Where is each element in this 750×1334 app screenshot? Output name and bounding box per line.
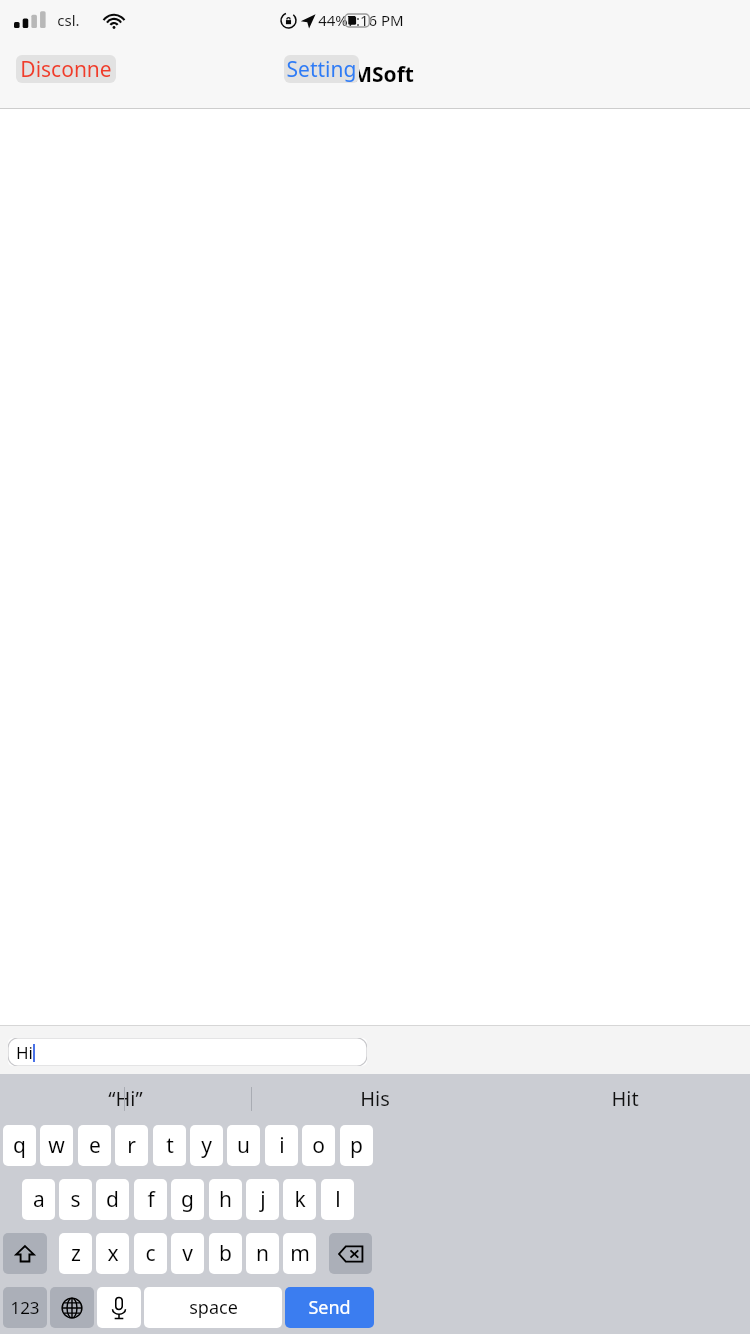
button[interactable]: g [171,1179,204,1220]
button[interactable]: e [78,1125,111,1166]
button[interactable]: n [246,1233,279,1274]
staticText: 123 [10,1296,40,1319]
button[interactable]: c [134,1233,167,1274]
button[interactable]: a [22,1179,55,1220]
staticText: Disconnect [16,55,116,83]
button[interactable]: x [96,1233,129,1274]
button[interactable]: f [134,1179,167,1220]
button[interactable]: w [40,1125,73,1166]
button[interactable]: Dictate [97,1287,141,1328]
button[interactable]: m [283,1233,316,1274]
staticText: “Hi” [108,1085,143,1112]
button[interactable]: h [209,1179,242,1220]
button[interactable]: Change keyboard [50,1287,94,1328]
button[interactable]: b [209,1233,242,1274]
button[interactable]: l [321,1179,354,1220]
staticText: l [335,1185,341,1214]
staticText: r [127,1131,136,1160]
button[interactable]: d [96,1179,129,1220]
button[interactable]: p [340,1125,373,1166]
staticText: z [71,1239,81,1268]
button[interactable]: u [227,1125,260,1166]
staticText: csl. [57,10,80,30]
staticText: 44% [318,10,348,30]
staticText: Send [308,1295,351,1320]
staticText: x [107,1239,119,1268]
staticText: v [182,1239,193,1268]
button[interactable]: o [302,1125,335,1166]
staticText: f [147,1185,155,1214]
staticText: p [350,1131,363,1160]
staticText: w [48,1131,65,1160]
staticText: h [219,1185,232,1214]
staticText: His [360,1085,390,1112]
staticText: Hi [16,1041,33,1064]
staticText: u [237,1131,250,1160]
staticText: k [294,1185,306,1214]
button[interactable]: 123 [3,1287,47,1328]
staticText: b [219,1239,232,1268]
button[interactable]: v [171,1233,204,1274]
staticText: n [256,1239,269,1268]
staticText: g [181,1185,194,1214]
staticText: Settings [284,55,359,83]
button[interactable]: Shift [3,1233,47,1274]
button[interactable]: “Hi” [0,1074,250,1123]
staticText: Hit [611,1085,639,1112]
staticText: a [33,1185,45,1214]
staticText: y [201,1131,212,1160]
button[interactable]: s [59,1179,92,1220]
staticText: 7:16 PM [347,10,404,30]
button[interactable]: y [190,1125,223,1166]
button[interactable]: space [144,1287,282,1328]
staticText: d [106,1185,119,1214]
button[interactable]: q [3,1125,36,1166]
staticText: i [279,1131,285,1160]
button[interactable]: Hi [8,1038,367,1066]
button[interactable]: Hit [500,1074,750,1123]
staticText: m [290,1239,310,1268]
button[interactable]: Send [285,1287,374,1328]
staticText: space [189,1295,238,1320]
staticText: t [166,1131,174,1160]
staticText: j [260,1185,266,1214]
button[interactable]: j [246,1179,279,1220]
button[interactable]: Backspace [329,1233,372,1274]
button[interactable]: His [250,1074,500,1123]
button[interactable]: k [283,1179,316,1220]
staticText: q [13,1131,26,1160]
staticText: HMSoft [336,60,414,89]
staticText: c [145,1239,156,1268]
button[interactable]: t [153,1125,186,1166]
staticText: o [312,1131,325,1160]
button[interactable]: z [59,1233,92,1274]
button[interactable]: Disconnect [16,55,116,83]
button[interactable]: i [265,1125,298,1166]
staticText: s [70,1185,81,1214]
staticText: e [89,1131,101,1160]
button[interactable]: Settings [284,55,359,83]
button[interactable]: r [115,1125,148,1166]
